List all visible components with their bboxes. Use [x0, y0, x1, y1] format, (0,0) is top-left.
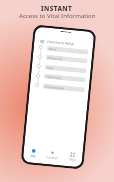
staticText: Favorites & Refuel: [47, 40, 75, 46]
staticText: Access to Vital Information: [19, 11, 96, 19]
staticText: Recent trip: [47, 56, 63, 61]
other: More: [70, 152, 75, 157]
staticText: Map: [30, 154, 36, 158]
staticText: Shopping mall: [45, 85, 64, 90]
staticText: Work: [47, 66, 54, 70]
button[interactable]: Home: [46, 46, 89, 55]
other: Favorites: [50, 150, 55, 155]
staticText: Favorites: [46, 155, 58, 160]
staticText: Coffee stop: [46, 75, 62, 80]
button[interactable]: More: [62, 152, 83, 163]
button[interactable]: Work: [45, 65, 87, 74]
staticText: INSTANT: [41, 4, 73, 13]
staticText: Home: [48, 47, 57, 51]
button[interactable]: Coffee stop: [44, 73, 86, 82]
button[interactable]: Map: [23, 148, 43, 159]
button[interactable]: Menu: [40, 40, 44, 43]
button[interactable]: Shopping mall: [43, 83, 85, 92]
other: Map: [31, 149, 36, 153]
button[interactable]: Recent trip: [45, 55, 88, 64]
button[interactable]: Favorites: [42, 150, 63, 161]
staticText: More: [69, 157, 76, 162]
